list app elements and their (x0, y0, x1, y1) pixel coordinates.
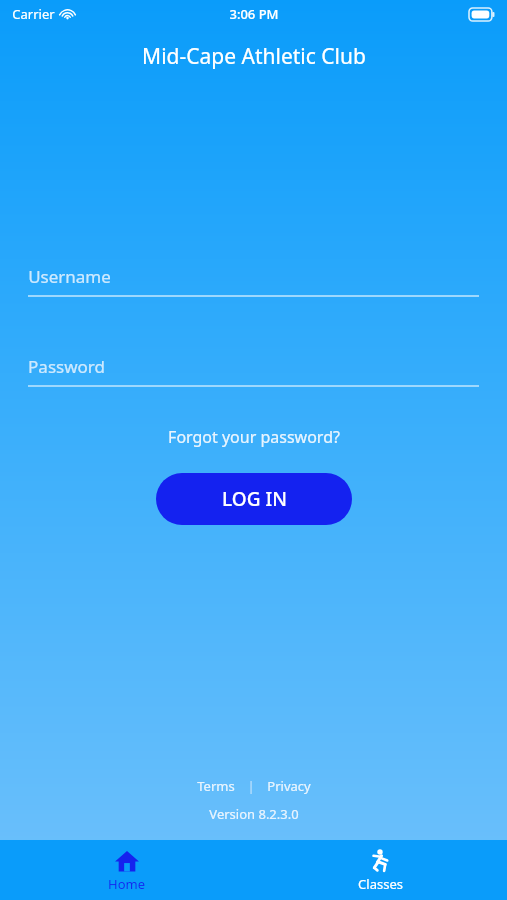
staticText: Mid-Cape Athletic Club (142, 42, 366, 71)
staticText: Password (28, 355, 105, 378)
button[interactable]: Forgot your password? (162, 423, 346, 451)
staticText: Username (28, 265, 111, 288)
staticText: Version 8.2.3.0 (209, 805, 299, 823)
button[interactable]: Username (28, 265, 479, 297)
staticText: Home (108, 875, 145, 893)
button[interactable]: Privacy (263, 775, 315, 797)
staticText: Classes (358, 875, 403, 893)
staticText: Privacy (267, 777, 311, 795)
staticText: | (247, 777, 255, 795)
staticText: Terms (197, 777, 235, 795)
button[interactable]: Classes (253, 840, 507, 900)
button[interactable]: Terms (193, 775, 239, 797)
button[interactable]: LOG IN (156, 473, 352, 525)
staticText: LOG IN (222, 486, 287, 512)
button[interactable]: Password (28, 355, 479, 387)
staticText: 3:06 PM (229, 5, 279, 23)
button[interactable]: Home (0, 840, 253, 900)
staticText: Forgot your password? (168, 426, 340, 448)
staticText: Carrier (12, 5, 55, 23)
